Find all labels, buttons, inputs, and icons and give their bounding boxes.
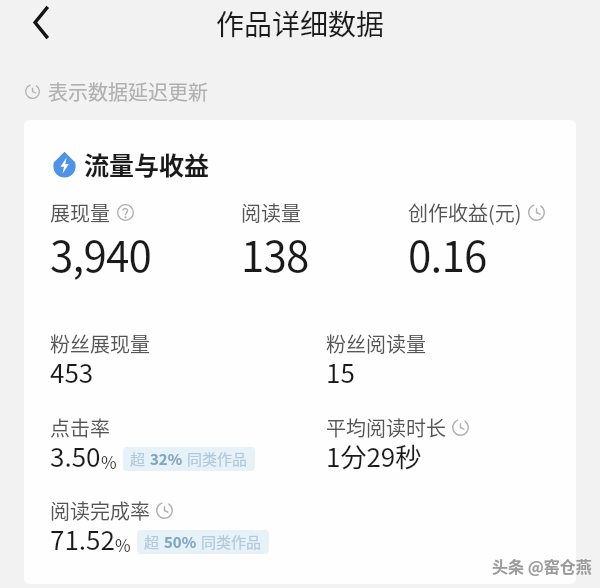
button[interactable]: Data is delayed [452, 419, 469, 436]
staticText: 作品详细数据 [216, 3, 385, 44]
button[interactable]: 超 [137, 530, 269, 554]
staticText: 创作收益(元) [408, 198, 522, 227]
staticText: % [101, 449, 117, 474]
staticText: 阅读完成率 [50, 496, 150, 525]
staticText: 1分29秒 [326, 437, 422, 475]
staticText: 展现量 [50, 198, 110, 227]
staticText: 粉丝展现量 [50, 329, 150, 358]
staticText: 阅读量 [241, 198, 301, 227]
staticText: 同类作品 [201, 531, 262, 553]
button[interactable]: 流量与收益 [51, 146, 210, 182]
staticText: 453 [50, 353, 94, 391]
staticText: 粉丝阅读量 [326, 329, 426, 358]
button[interactable]: 表示数据延迟更新 [25, 77, 212, 106]
staticText: 50% [164, 531, 197, 553]
staticText: 同类作品 [187, 448, 248, 470]
staticText: 超 [144, 531, 160, 553]
button[interactable]: Back [14, 0, 66, 48]
staticText: 3.50 [50, 437, 101, 475]
staticText: 流量与收益 [84, 146, 210, 182]
button[interactable]: Data is delayed [156, 502, 173, 519]
staticText: 平均阅读时长 [326, 413, 446, 442]
staticText: 点击率 [50, 413, 110, 442]
staticText: % [115, 532, 131, 557]
staticText: 超 [130, 448, 146, 470]
staticText: 71.52 [50, 520, 115, 558]
staticText: 3,940 [50, 223, 151, 284]
button[interactable]: 超 [123, 447, 255, 471]
button[interactable]: Data is delayed [528, 204, 545, 221]
staticText: 15 [326, 353, 355, 391]
staticText: 0.16 [408, 223, 487, 284]
staticText: 32% [150, 448, 183, 470]
staticText: 头条 @窑仓燕 [492, 554, 592, 577]
button[interactable]: What is this metric [117, 204, 134, 221]
staticText: 138 [241, 223, 309, 284]
staticText: 表示数据延迟更新 [48, 77, 208, 106]
